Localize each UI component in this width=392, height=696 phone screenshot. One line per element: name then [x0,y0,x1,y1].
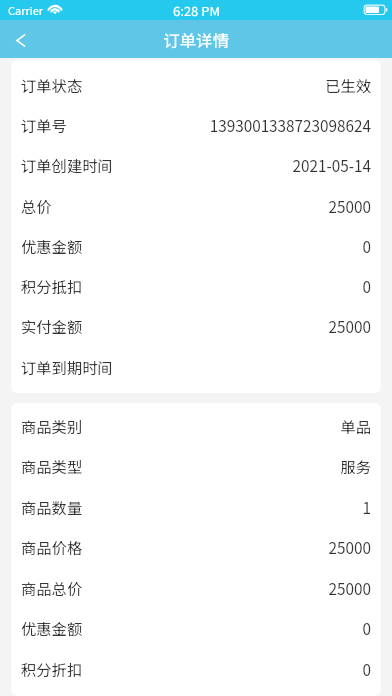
button[interactable]: 积分折扣 [11,649,381,689]
staticText: 订单状态 [21,74,83,96]
button[interactable]: 实付金额 [11,306,381,346]
staticText: 6:28 PM [173,1,220,20]
staticText: 订单号 [21,114,67,136]
staticText: 商品类型 [21,455,83,477]
staticText: 服务 [340,455,371,477]
staticText: 0 [362,275,371,297]
staticText: 商品类别 [21,415,83,437]
staticText: 1 [362,496,371,518]
staticText: 单品 [340,415,371,437]
button[interactable]: 商品总价 [11,568,381,608]
staticText: 订单详情 [163,28,229,52]
button[interactable]: 商品类别 [11,406,381,446]
staticText: 积分折扣 [21,658,83,680]
button[interactable]: 优惠金额 [11,226,381,266]
button[interactable]: 总价 [11,186,381,226]
button[interactable]: 商品类型 [11,446,381,486]
staticText: 0 [362,658,371,680]
staticText: 已生效 [325,74,371,96]
other: Battery [363,4,387,15]
staticText: 0 [362,235,371,257]
staticText: 25000 [328,195,371,217]
staticText: 0 [362,617,371,639]
button[interactable]: 优惠金额 [11,608,381,648]
button[interactable]: 商品价格 [11,527,381,567]
button[interactable]: 订单到期时间 [11,347,381,387]
staticText: 实付金额 [21,315,83,337]
staticText: 优惠金额 [21,235,83,257]
staticText: 订单创建时间 [21,154,113,176]
staticText: 积分抵扣 [21,275,83,297]
staticText: 1393001338723098624 [209,114,371,136]
button[interactable]: 订单创建时间 [11,145,381,185]
staticText: 商品价格 [21,536,83,558]
staticText: 商品总价 [21,577,83,599]
staticText: 总价 [21,195,52,217]
button[interactable]: 订单号 [11,105,381,145]
staticText: 商品数量 [21,496,83,518]
button[interactable]: Back [0,20,42,58]
button[interactable]: 积分抵扣 [11,266,381,306]
button[interactable]: 商品数量 [11,487,381,527]
staticText: 25000 [328,536,371,558]
staticText: 25000 [328,315,371,337]
staticText: 优惠金额 [21,617,83,639]
staticText: 2021-05-14 [292,154,371,176]
staticText: Carrier [8,2,44,18]
button[interactable]: 订单状态 [11,65,381,105]
staticText: 订单到期时间 [21,356,113,378]
other: Wi-Fi [47,0,63,16]
staticText: 25000 [328,577,371,599]
